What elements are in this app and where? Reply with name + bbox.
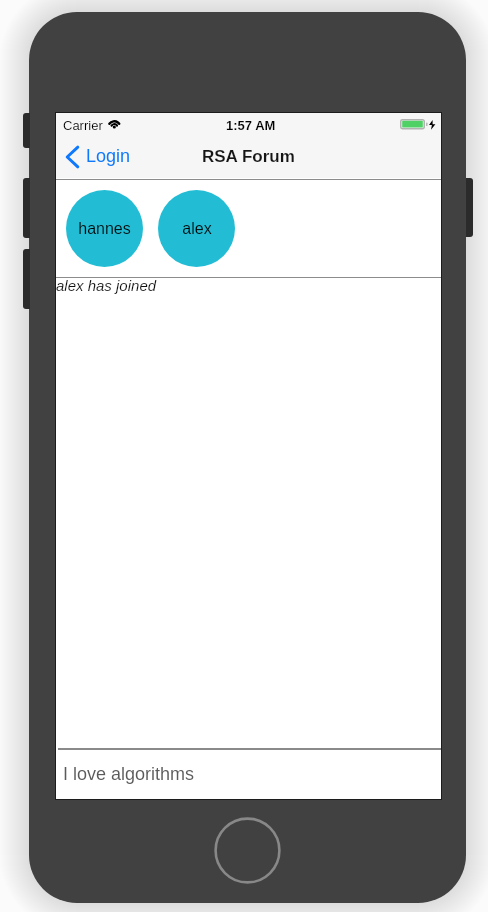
other: Wi-Fi: [107, 117, 122, 128]
staticText: alex: [182, 220, 212, 238]
other: Charging: [429, 120, 436, 130]
staticText: 1:57 AM: [226, 118, 276, 133]
button[interactable]: Home: [214, 817, 281, 884]
staticText: alex has joined: [56, 277, 157, 294]
staticText: RSA Forum: [202, 147, 295, 166]
other: Battery: [400, 119, 428, 130]
staticText: Login: [86, 146, 131, 166]
button[interactable]: alex: [158, 190, 235, 267]
staticText: I love algorithms: [63, 764, 195, 784]
staticText: hannes: [78, 220, 131, 238]
button[interactable]: hannes: [66, 190, 143, 267]
staticText: Carrier: [63, 118, 103, 133]
button[interactable]: Login: [56, 136, 141, 178]
